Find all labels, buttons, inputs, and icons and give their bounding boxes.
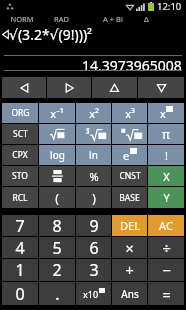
- staticText: ORG: [11, 107, 30, 119]
- staticText: AC: [159, 218, 173, 233]
- button[interactable]: Right: [47, 77, 91, 98]
- button[interactable]: BASE: [112, 187, 147, 208]
- button[interactable]: +: [112, 259, 147, 281]
- button[interactable]: ): [76, 187, 111, 208]
- button[interactable]: X: [148, 166, 184, 186]
- button[interactable]: e to the power: [112, 145, 147, 165]
- button[interactable]: Ans: [112, 282, 147, 305]
- button[interactable]: 8: [39, 215, 75, 236]
- staticText: SCT: [13, 128, 28, 140]
- staticText: ÷: [162, 238, 171, 258]
- staticText: Y: [163, 190, 170, 205]
- button[interactable]: RCL: [2, 187, 38, 208]
- button[interactable]: 6: [76, 237, 111, 258]
- staticText: %: [89, 169, 99, 184]
- button[interactable]: 9: [76, 215, 111, 236]
- button[interactable]: =: [148, 282, 184, 305]
- button[interactable]: x³: [112, 103, 147, 123]
- button[interactable]: π: [148, 124, 184, 144]
- button[interactable]: .: [39, 282, 75, 305]
- button[interactable]: 3: [76, 259, 111, 281]
- button[interactable]: fraction: [39, 166, 75, 186]
- button[interactable]: CNST: [112, 166, 147, 186]
- staticText: STO: [12, 170, 28, 182]
- button[interactable]: 0: [2, 282, 38, 305]
- button[interactable]: 5: [39, 237, 75, 258]
- staticText: ): [92, 190, 96, 206]
- staticText: 9: [89, 215, 99, 236]
- staticText: x²: [89, 106, 99, 121]
- button[interactable]: Up: [92, 77, 137, 98]
- staticText: ln: [89, 148, 98, 162]
- button[interactable]: 4: [2, 237, 38, 258]
- staticText: −: [162, 260, 171, 280]
- button[interactable]: ln: [76, 145, 111, 165]
- staticText: x10: [83, 288, 99, 300]
- staticText: NORM: [10, 14, 34, 24]
- button[interactable]: 1: [2, 259, 38, 281]
- button[interactable]: Down: [138, 77, 184, 98]
- staticText: +: [125, 260, 134, 280]
- button[interactable]: ORG: [2, 103, 38, 123]
- staticText: (: [55, 190, 59, 206]
- button[interactable]: Left: [2, 77, 46, 98]
- button[interactable]: x²: [76, 103, 111, 123]
- button[interactable]: square root: [39, 124, 75, 144]
- button[interactable]: −: [148, 259, 184, 281]
- button[interactable]: log: [39, 145, 75, 165]
- staticText: x: [160, 106, 166, 121]
- button[interactable]: (: [39, 187, 75, 208]
- staticText: x⁻¹: [50, 106, 64, 121]
- button[interactable]: AC: [148, 215, 184, 236]
- staticText: 1: [15, 259, 25, 281]
- button[interactable]: CPX: [2, 145, 38, 165]
- staticText: =: [162, 284, 171, 304]
- staticText: e: [123, 148, 130, 163]
- staticText: π: [162, 126, 170, 142]
- staticText: .: [55, 283, 60, 305]
- staticText: 12:10: [157, 0, 182, 13]
- staticText: BASE: [119, 192, 140, 204]
- staticText: A + Bi: [103, 14, 123, 24]
- staticText: 5: [52, 237, 62, 258]
- staticText: !: [165, 148, 168, 163]
- button[interactable]: ×: [112, 237, 147, 258]
- staticText: CNST: [119, 170, 141, 182]
- button[interactable]: STO: [2, 166, 38, 186]
- button[interactable]: !: [148, 145, 184, 165]
- button[interactable]: SCT: [2, 124, 38, 144]
- button[interactable]: x⁻¹: [39, 103, 75, 123]
- button[interactable]: 7: [2, 215, 38, 236]
- button[interactable]: ÷: [148, 237, 184, 258]
- staticText: 4: [15, 237, 25, 258]
- staticText: DEL: [120, 218, 140, 233]
- button[interactable]: x to the power: [148, 103, 184, 123]
- staticText: 6: [89, 237, 99, 258]
- staticText: x³: [125, 106, 135, 121]
- staticText: RCL: [12, 192, 28, 204]
- staticText: X: [163, 169, 170, 184]
- button[interactable]: cube root: [76, 124, 111, 144]
- staticText: Ans: [121, 287, 139, 301]
- staticText: 14.3973965008: [82, 56, 182, 70]
- button[interactable]: nth root: [112, 124, 147, 144]
- button[interactable]: DEL: [112, 215, 147, 236]
- staticText: log: [50, 148, 65, 162]
- staticText: 8: [52, 215, 62, 236]
- staticText: 0: [15, 283, 25, 305]
- staticText: Δ: [144, 14, 149, 24]
- button[interactable]: 2: [39, 259, 75, 281]
- staticText: √(3.2*√(9!)))²: [9, 25, 92, 43]
- staticText: 2: [52, 259, 62, 281]
- staticText: RAD: [54, 14, 69, 24]
- staticText: 7: [15, 215, 25, 236]
- button[interactable]: Y: [148, 187, 184, 208]
- staticText: CPX: [12, 149, 28, 161]
- button[interactable]: times ten to the power: [76, 282, 111, 305]
- button[interactable]: %: [76, 166, 111, 186]
- staticText: ×: [125, 238, 134, 258]
- staticText: 3: [89, 259, 99, 281]
